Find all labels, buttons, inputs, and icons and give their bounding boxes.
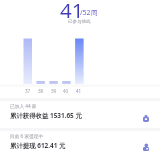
staticText: 41 xyxy=(76,88,82,94)
staticText: 39 xyxy=(51,88,57,94)
staticText: 目前 6 家提现中 xyxy=(10,133,44,139)
staticText: 41 xyxy=(60,0,84,24)
staticText: 40 xyxy=(63,88,69,94)
button[interactable]: 已加入 44 家 xyxy=(0,101,160,128)
staticText: 已参与挑战 xyxy=(68,19,91,25)
staticText: 37 xyxy=(25,88,31,94)
staticText: 累计获得收益 1531.65 元 xyxy=(10,111,82,120)
staticText: /52周 xyxy=(80,8,98,18)
staticText: 38 xyxy=(38,88,44,94)
other: Earnings xyxy=(143,115,149,122)
staticText: 累计提现 612.41 元 xyxy=(10,141,66,150)
other: Withdraw xyxy=(143,144,149,151)
button[interactable]: 目前 6 家提现中 xyxy=(0,131,160,160)
staticText: 已加入 44 家 xyxy=(10,103,37,109)
